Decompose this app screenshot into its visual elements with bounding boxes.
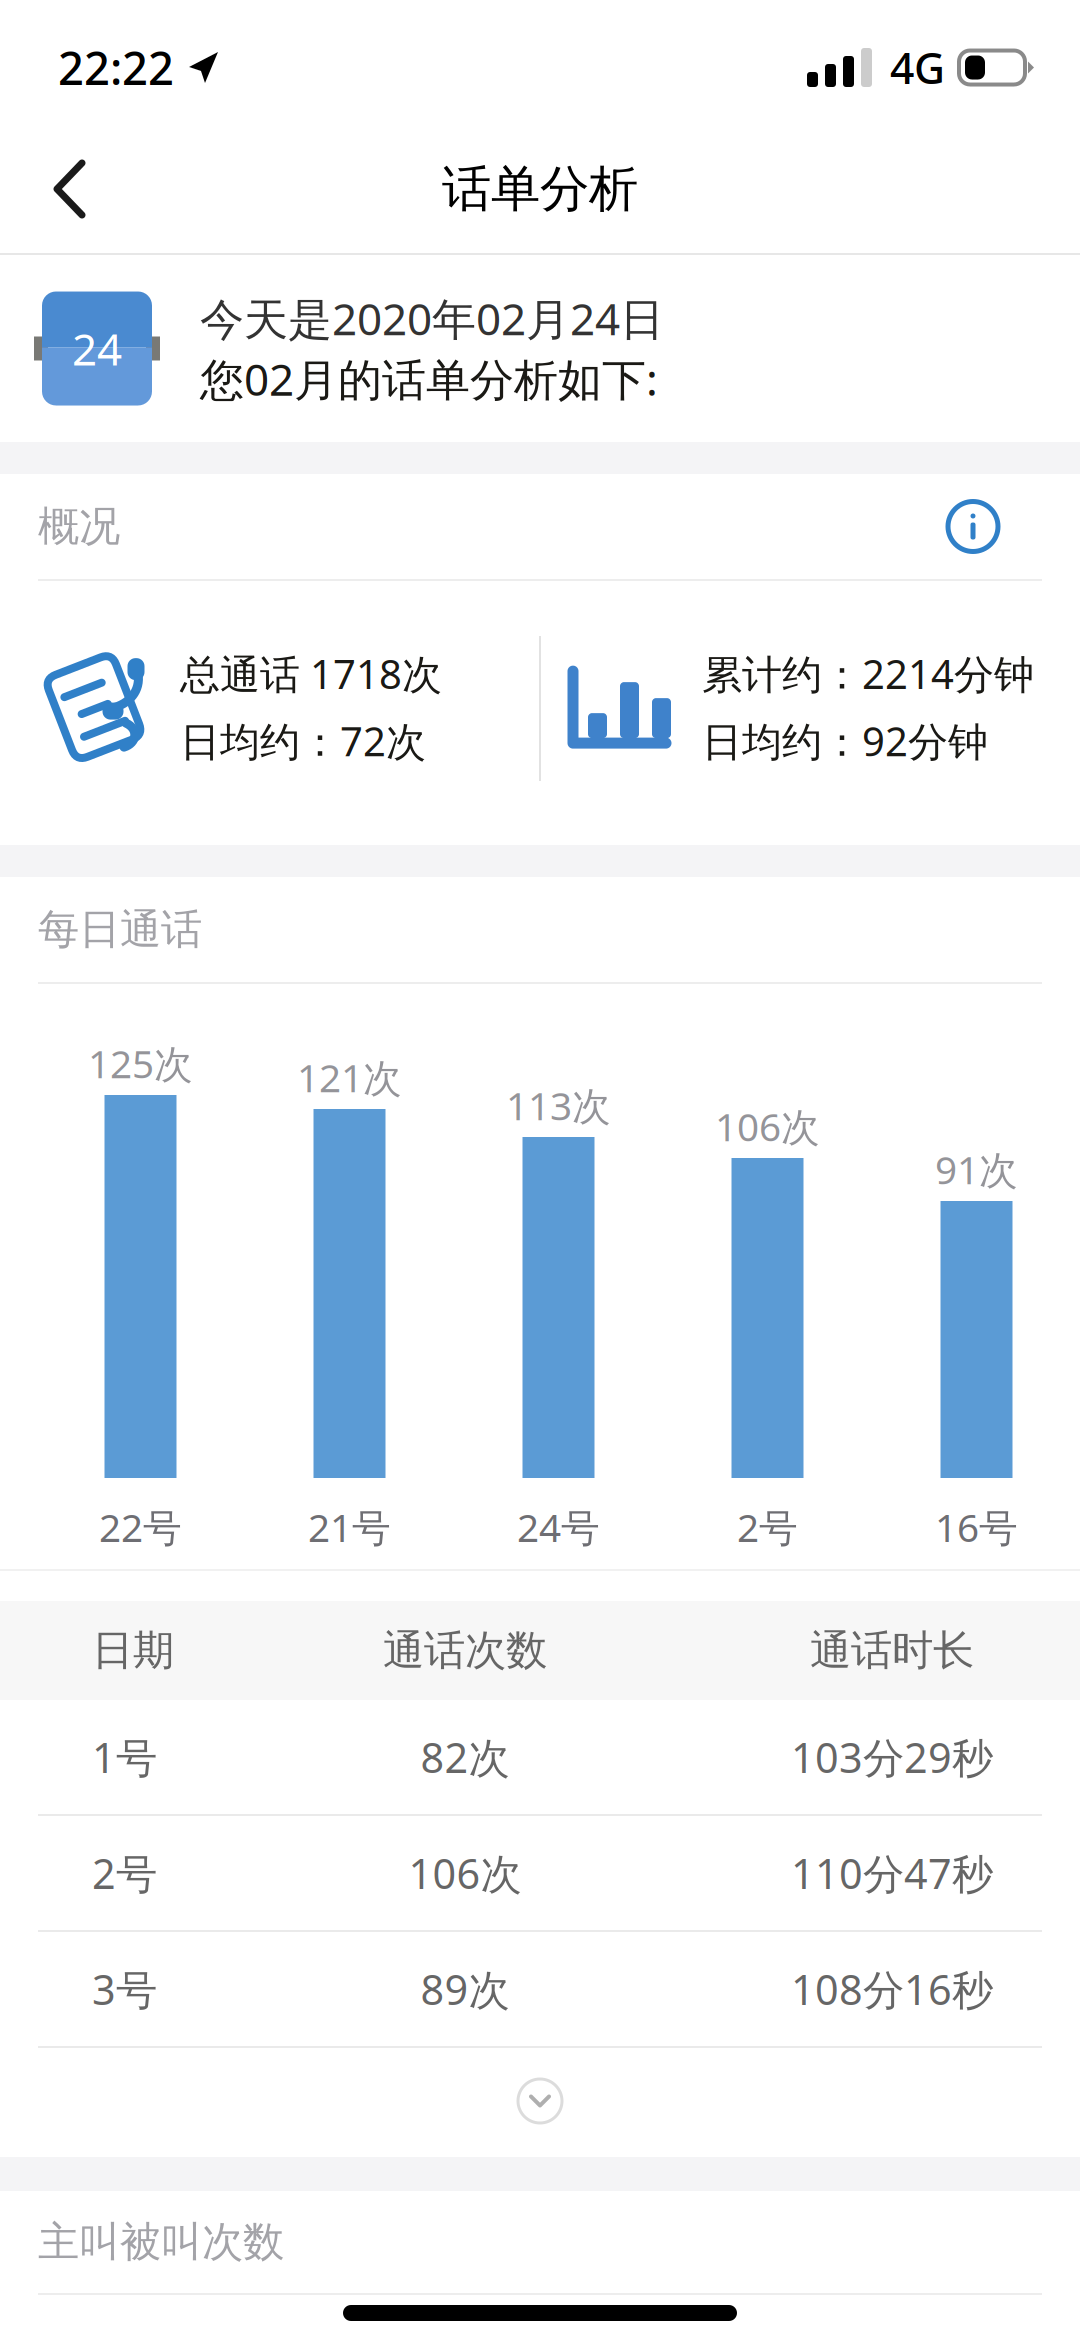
button[interactable]: Info bbox=[948, 501, 1042, 551]
staticText: 通话次数 bbox=[383, 1625, 547, 1676]
button[interactable]: Back bbox=[0, 124, 140, 254]
staticText: 3号 bbox=[92, 1962, 157, 2016]
staticText: 89次 bbox=[420, 1962, 509, 2016]
staticText: 1号 bbox=[92, 1730, 157, 1784]
staticText: 121次 bbox=[297, 1052, 402, 1103]
staticText: 总通话 1718次 bbox=[180, 647, 442, 700]
staticText: 4G bbox=[890, 39, 945, 96]
staticText: 通话时长 bbox=[810, 1625, 974, 1676]
staticText: 累计约：2214分钟 bbox=[702, 647, 1034, 700]
staticText: 2号 bbox=[92, 1846, 157, 1900]
staticText: 话单分析 bbox=[442, 159, 638, 219]
staticText: 82次 bbox=[420, 1730, 509, 1784]
button[interactable]: Show more bbox=[0, 2048, 1080, 2187]
staticText: 103分29秒 bbox=[791, 1730, 993, 1784]
staticText: 概况 bbox=[38, 501, 120, 552]
staticText: 106次 bbox=[715, 1101, 820, 1152]
staticText: 22号 bbox=[99, 1501, 182, 1553]
staticText: 您02月的话单分析如下: bbox=[200, 349, 658, 408]
staticText: 125次 bbox=[88, 1038, 193, 1089]
staticText: 24 bbox=[72, 319, 122, 378]
staticText: 16号 bbox=[935, 1501, 1018, 1553]
staticText: 今天是2020年02月24日 bbox=[200, 289, 664, 347]
staticText: 21号 bbox=[308, 1501, 391, 1553]
staticText: 日期 bbox=[92, 1625, 174, 1676]
staticText: 每日通话 bbox=[38, 904, 202, 955]
staticText: 主叫被叫次数 bbox=[38, 2217, 284, 2267]
staticText: 2号 bbox=[737, 1501, 798, 1553]
staticText: 日均约：92分钟 bbox=[702, 714, 988, 767]
staticText: 24号 bbox=[517, 1501, 600, 1553]
staticText: 110分47秒 bbox=[791, 1846, 993, 1900]
staticText: 113次 bbox=[506, 1080, 611, 1131]
staticText: 日均约：72次 bbox=[180, 714, 426, 767]
staticText: 106次 bbox=[408, 1846, 521, 1900]
staticText: 22:22 bbox=[58, 37, 174, 98]
staticText: 108分16秒 bbox=[791, 1962, 993, 2016]
staticText: 91次 bbox=[935, 1144, 1018, 1195]
